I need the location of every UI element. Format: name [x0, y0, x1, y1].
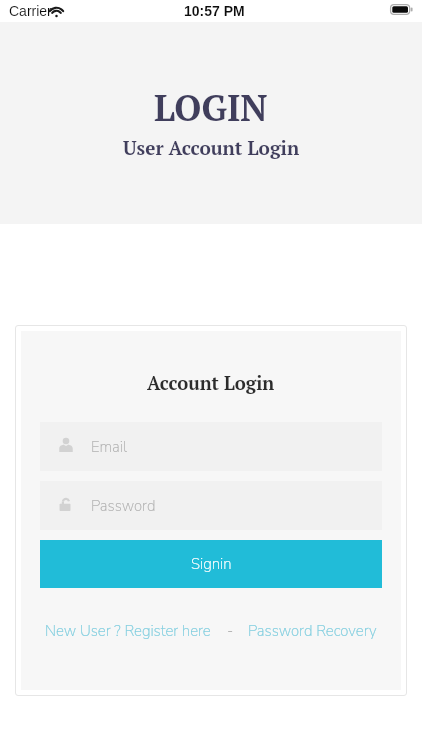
other: User — [59, 438, 73, 452]
staticText: Carrier — [9, 3, 52, 19]
button[interactable]: Password Recovery — [248, 621, 377, 641]
staticText: New User ? Register here — [45, 621, 211, 641]
button[interactable]: New User ? Register here — [45, 621, 211, 641]
staticText: 10:57 PM — [184, 3, 245, 19]
button[interactable]: User — [40, 422, 382, 471]
staticText: Signin — [191, 554, 232, 574]
staticText: LOGIN — [154, 84, 268, 132]
staticText: Account Login — [147, 371, 275, 396]
staticText: User Account Login — [123, 135, 300, 160]
staticText: - — [227, 621, 234, 641]
other: Password — [59, 497, 73, 511]
button[interactable]: Password — [40, 481, 382, 530]
button[interactable]: Signin — [40, 540, 382, 588]
staticText: Email — [91, 437, 128, 457]
staticText: Password Recovery — [248, 621, 377, 641]
staticText: Password — [91, 496, 156, 516]
